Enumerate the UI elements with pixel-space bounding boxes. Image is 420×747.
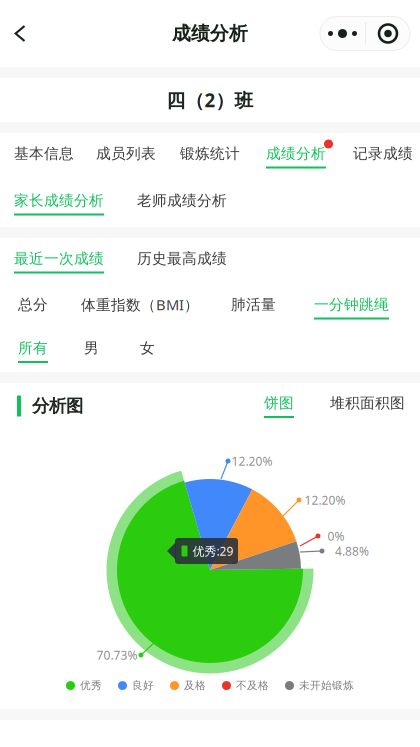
button[interactable]: 女 bbox=[140, 339, 155, 363]
button[interactable]: 成员列表 bbox=[96, 144, 156, 168]
staticText: 成员列表 bbox=[96, 144, 156, 162]
staticText: 成绩分析 bbox=[172, 22, 248, 45]
staticText: 70.73% bbox=[96, 647, 137, 663]
staticText: 总分 bbox=[18, 295, 48, 313]
staticText: 分析图 bbox=[32, 395, 83, 417]
staticText: 肺活量 bbox=[231, 295, 276, 313]
button[interactable]: 不及格 bbox=[222, 679, 269, 692]
button[interactable]: 男 bbox=[84, 339, 99, 363]
staticText: 男 bbox=[84, 339, 99, 357]
button[interactable]: 未开始锻炼 bbox=[285, 679, 354, 692]
staticText: 不及格 bbox=[236, 679, 269, 692]
staticText: 家长成绩分析 bbox=[14, 191, 104, 209]
button[interactable]: 所有 bbox=[18, 339, 48, 363]
button[interactable]: 基本信息 bbox=[14, 144, 74, 168]
button[interactable]: 及格 bbox=[170, 679, 206, 692]
staticText: 未开始锻炼 bbox=[299, 679, 354, 692]
button[interactable]: 历史最高成绩 bbox=[137, 249, 227, 273]
staticText: 女 bbox=[140, 339, 155, 357]
staticText: 最近一次成绩 bbox=[14, 249, 104, 267]
button[interactable]: 返回 bbox=[0, 10, 38, 56]
button[interactable]: 良好 bbox=[118, 679, 154, 692]
staticText: 0% bbox=[327, 528, 344, 544]
staticText: 饼图 bbox=[264, 394, 294, 412]
button[interactable]: 锻炼统计 bbox=[180, 144, 240, 168]
button[interactable]: 堆积面积图 bbox=[330, 394, 405, 418]
staticText: 记录成绩 bbox=[353, 144, 413, 162]
button[interactable]: 体重指数（BMI） bbox=[81, 295, 199, 320]
button[interactable]: 饼图 bbox=[264, 394, 294, 418]
staticText: 老师成绩分析 bbox=[137, 191, 227, 209]
staticText: 一分钟跳绳 bbox=[314, 295, 389, 313]
staticText: 成绩分析 bbox=[266, 144, 326, 162]
button[interactable]: 成绩分析 bbox=[266, 144, 326, 168]
button[interactable]: 肺活量 bbox=[231, 295, 276, 319]
staticText: 良好 bbox=[132, 679, 154, 692]
staticText: 12.20% bbox=[231, 453, 272, 469]
staticText: 体重指数（BMI） bbox=[81, 295, 199, 314]
staticText: 优秀:29 bbox=[192, 543, 233, 559]
staticText: 历史最高成绩 bbox=[137, 249, 227, 267]
staticText: 4.88% bbox=[335, 543, 369, 559]
button[interactable]: 最近一次成绩 bbox=[14, 249, 104, 273]
button[interactable]: 优秀 bbox=[66, 679, 102, 692]
staticText: 锻炼统计 bbox=[180, 144, 240, 162]
button[interactable]: 一分钟跳绳 bbox=[314, 295, 389, 319]
staticText: 堆积面积图 bbox=[330, 394, 405, 412]
button[interactable]: 记录成绩 bbox=[353, 144, 413, 168]
staticText: 12.20% bbox=[304, 492, 345, 508]
button[interactable]: 老师成绩分析 bbox=[137, 191, 227, 215]
staticText: 所有 bbox=[18, 339, 48, 357]
button[interactable]: 总分 bbox=[18, 295, 48, 319]
staticText: 基本信息 bbox=[14, 144, 74, 162]
button[interactable]: 家长成绩分析 bbox=[14, 191, 104, 215]
staticText: 四（2）班 bbox=[166, 88, 253, 112]
staticText: 优秀 bbox=[80, 679, 102, 692]
button[interactable]: 更多 bbox=[320, 16, 410, 50]
staticText: 及格 bbox=[184, 679, 206, 692]
